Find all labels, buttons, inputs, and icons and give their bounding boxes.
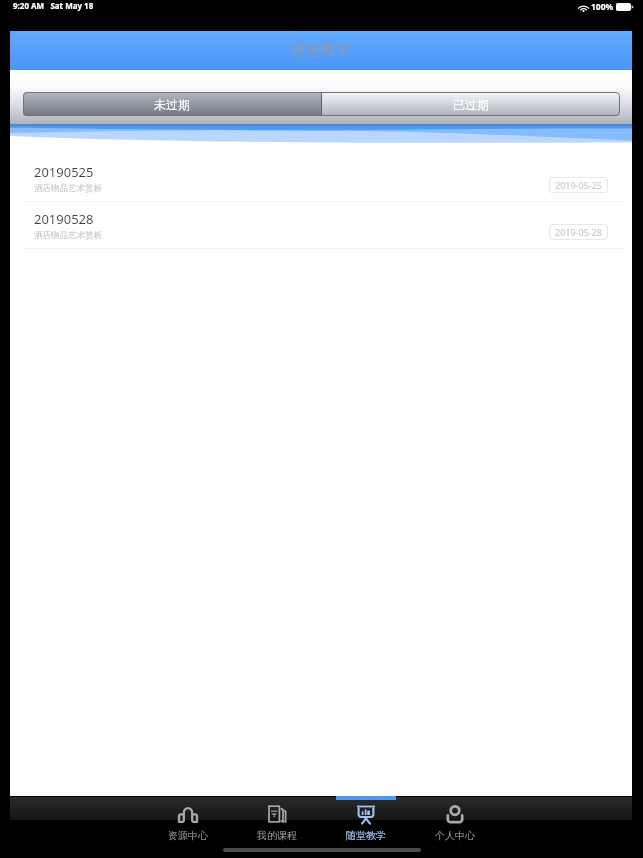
staticText: 100% <box>591 1 614 13</box>
staticText: 我的课程 <box>257 829 297 842</box>
button[interactable]: 20190528 <box>10 202 632 249</box>
button[interactable]: Profile <box>410 796 499 858</box>
staticText: 资源中心 <box>168 829 208 842</box>
staticText: 已过期 <box>453 97 489 112</box>
staticText: 2019-05-28 <box>555 226 602 238</box>
button[interactable]: 已过期 <box>322 92 620 116</box>
staticText: 未过期 <box>154 97 190 112</box>
staticText: 20190525 <box>34 163 94 181</box>
staticText: 随堂教学 <box>346 829 386 842</box>
button[interactable]: Resource center <box>143 796 232 858</box>
staticText: 酒店物品艺术赏析 <box>34 183 102 194</box>
staticText: 20190528 <box>34 210 94 228</box>
button[interactable]: Live teaching <box>321 796 410 858</box>
staticText: 9:20 AM Sat May 18 <box>13 0 94 11</box>
button[interactable]: 20190525 <box>10 155 632 202</box>
staticText: 随堂教学 <box>291 41 351 60</box>
button[interactable]: 未过期 <box>23 92 321 116</box>
staticText: 酒店物品艺术赏析 <box>34 230 102 241</box>
staticText: 2019-05-25 <box>555 179 602 191</box>
staticText: 个人中心 <box>435 829 475 842</box>
button[interactable]: My courses <box>232 796 321 858</box>
